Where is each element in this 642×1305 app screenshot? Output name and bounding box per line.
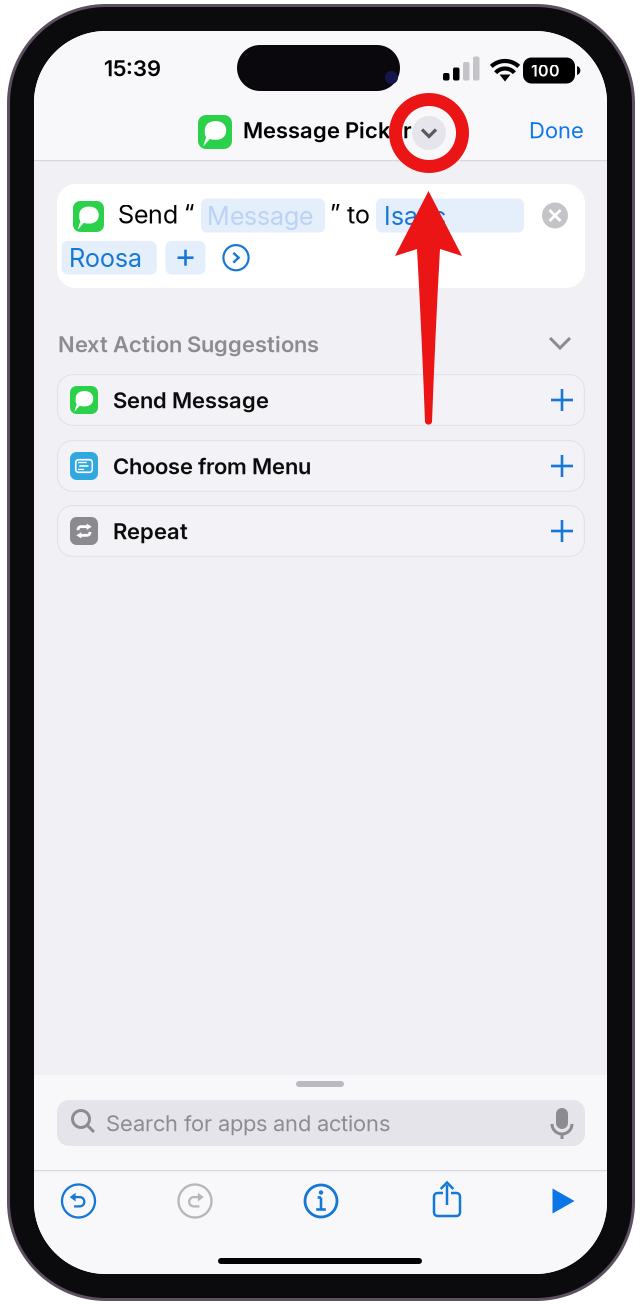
staticText: Message Picker [243, 117, 412, 144]
button[interactable]: Choose from Menu [34, 31, 607, 1274]
staticText: Choose from Menu [113, 453, 311, 480]
button[interactable]: Show more [34, 31, 607, 1274]
button[interactable]: Send Message [34, 31, 607, 1274]
staticText: Message [207, 200, 313, 231]
staticText: Send Message [113, 387, 269, 414]
staticText: “ [184, 198, 194, 229]
staticText: Roosa [69, 242, 142, 273]
button[interactable]: Done [34, 31, 607, 1274]
button[interactable]: Repeat [34, 31, 607, 1274]
button[interactable]: Clear [34, 31, 607, 1274]
button[interactable]: Undo [34, 31, 607, 1274]
staticText: Search for apps and actions [106, 1110, 390, 1137]
button[interactable]: Redo [34, 31, 607, 1274]
staticText: 15:39 [104, 55, 161, 82]
button[interactable]: Next Action Suggestions [34, 31, 607, 1274]
staticText: Isaac [384, 200, 446, 231]
button[interactable]: Search for apps and actions [34, 31, 607, 1274]
button[interactable]: Add recipient [34, 31, 607, 1274]
staticText: Next Action Suggestions [58, 331, 319, 358]
button[interactable]: Share [34, 31, 607, 1274]
staticText: 100 [531, 61, 560, 80]
staticText: ” [330, 198, 340, 229]
staticText: Send [118, 199, 178, 230]
staticText: to [347, 199, 370, 230]
staticText: Repeat [113, 518, 188, 545]
staticText: Done [529, 117, 584, 144]
button[interactable]: Collapse [34, 31, 607, 1274]
button[interactable]: Run [34, 31, 607, 1274]
button[interactable]: Details [34, 31, 607, 1274]
